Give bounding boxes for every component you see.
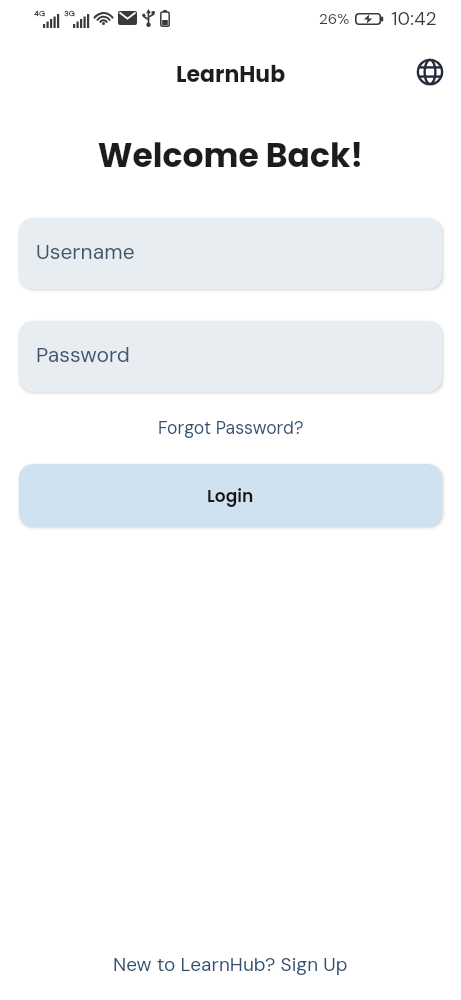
staticText: 10:42 [391,6,437,31]
button[interactable]: Forgot Password? [158,417,304,440]
staticText: 3G [64,8,75,18]
button[interactable] [415,57,445,87]
staticText: New to LearnHub? Sign Up [113,952,348,977]
staticText: 4G [34,8,46,18]
staticText: 26% [319,9,350,29]
staticText: LearnHub [176,59,286,90]
staticText: Welcome Back! [0,132,461,178]
staticText: Username [36,238,135,265]
button[interactable]: New to LearnHub? Sign Up [113,952,348,977]
button[interactable]: Username [19,218,442,289]
staticText: Login [207,484,254,508]
staticText: Password [36,341,130,368]
button[interactable]: Password [19,321,442,392]
button[interactable]: Login [19,464,442,527]
staticText: Forgot Password? [158,417,304,440]
